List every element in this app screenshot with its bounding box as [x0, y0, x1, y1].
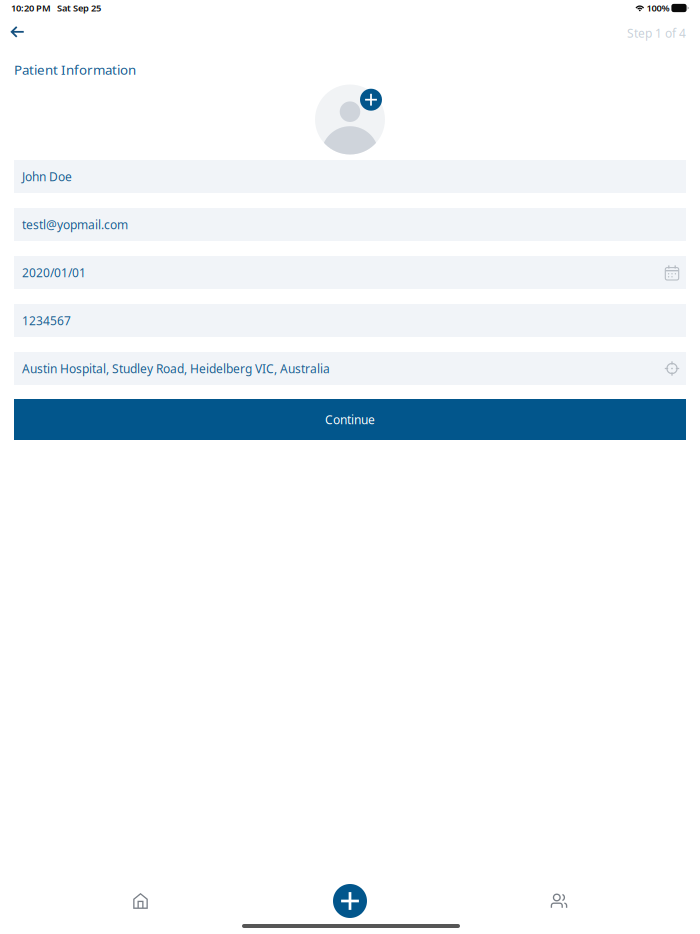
staticText: Sat Sep 25 — [51, 2, 101, 14]
staticText: testl@yopmail.com — [22, 216, 128, 232]
button[interactable]: Patients — [523, 877, 595, 925]
button[interactable]: Back — [0, 17, 36, 47]
button[interactable]: Add — [314, 877, 386, 925]
staticText: 10:20 PM — [11, 2, 51, 14]
button[interactable]: Continue — [14, 399, 686, 440]
staticText: Austin Hospital, Studley Road, Heidelber… — [22, 360, 330, 376]
staticText: 2020/01/01 — [22, 264, 86, 280]
button[interactable]: Add patient photo — [315, 84, 385, 154]
button[interactable]: Home — [104, 877, 176, 925]
staticText: Continue — [325, 411, 375, 427]
staticText: 100% — [644, 2, 671, 14]
staticText: Step 1 of 4 — [627, 25, 686, 41]
staticText: Patient Information — [14, 61, 136, 78]
staticText: John Doe — [22, 168, 72, 184]
staticText: 1234567 — [22, 312, 71, 328]
